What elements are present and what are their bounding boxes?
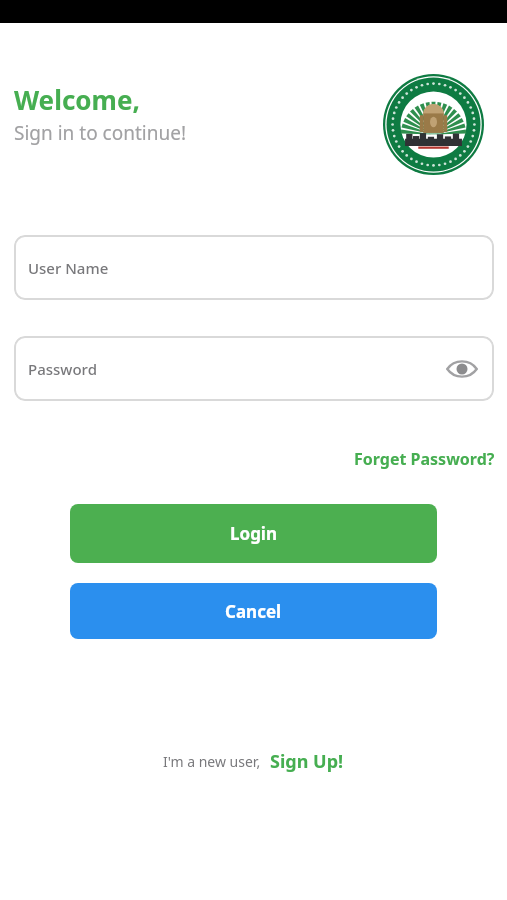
staticText: Login [230, 522, 278, 545]
staticText: I'm a new user, [163, 752, 261, 771]
button[interactable]: Password [14, 336, 494, 401]
button[interactable]: User Name [14, 235, 494, 300]
button[interactable]: Sign Up! [270, 749, 344, 774]
button[interactable]: Login [70, 504, 437, 563]
staticText: Sign Up! [270, 749, 344, 774]
staticText: Sign in to continue! [14, 120, 187, 146]
staticText: Welcome, [14, 82, 140, 117]
staticText: Cancel [225, 600, 282, 623]
staticText: Password [28, 359, 97, 379]
button[interactable]: Show password [443, 350, 481, 388]
button[interactable]: Forget Password? [300, 443, 495, 475]
button[interactable]: Cancel [70, 583, 437, 639]
staticText: Forget Password? [354, 448, 495, 470]
staticText: User Name [28, 258, 109, 278]
